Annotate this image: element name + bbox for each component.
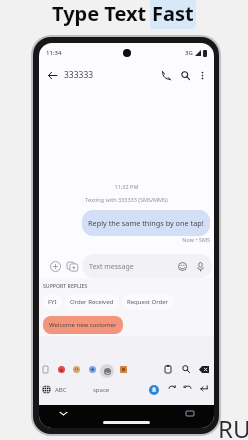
- staticText: 3G: [185, 49, 193, 57]
- staticText: ABC: [55, 386, 67, 394]
- button[interactable]: Request Order: [122, 294, 174, 310]
- button[interactable]: Objects: [117, 363, 129, 375]
- staticText: Request Order: [127, 298, 169, 306]
- button[interactable]: More options: [195, 68, 209, 82]
- button[interactable]: Reply the same things by one tap!: [82, 210, 210, 236]
- button[interactable]: FYI: [43, 294, 62, 310]
- button[interactable]: Call: [158, 67, 175, 84]
- staticText: Now • SMS: [43, 236, 210, 243]
- staticText: 11:32 PM: [43, 183, 210, 190]
- button[interactable]: space: [93, 382, 110, 398]
- staticText: 333333: [64, 69, 94, 81]
- button[interactable]: Backspace: [198, 363, 210, 375]
- button[interactable]: Animals: [70, 363, 82, 375]
- button[interactable]: Smileys: [55, 363, 67, 375]
- button[interactable]: Search keyboard: [180, 363, 192, 375]
- staticText: FYI: [48, 298, 57, 306]
- button[interactable]: Gallery: [64, 258, 80, 274]
- button[interactable]: Redo: [166, 382, 178, 394]
- button[interactable]: Add attachment: [47, 258, 63, 274]
- button[interactable]: Recent: [39, 363, 51, 375]
- staticText: RU: [218, 412, 248, 440]
- button[interactable]: Back: [44, 67, 61, 84]
- button[interactable]: Emoji: [176, 260, 189, 273]
- button[interactable]: Voice input: [194, 260, 207, 273]
- staticText: Text message: [89, 262, 134, 272]
- staticText: Order Received: [70, 298, 114, 306]
- button[interactable]: Order Received: [65, 294, 119, 310]
- button[interactable]: Clipboard: [162, 363, 174, 375]
- button[interactable]: Hide keyboard: [57, 407, 69, 419]
- staticText: Reply the same things by one tap!: [88, 218, 204, 228]
- button[interactable]: ABC: [55, 382, 67, 398]
- staticText: Type Text: [52, 0, 147, 27]
- staticText: space: [93, 386, 110, 394]
- button[interactable]: Keyboard switcher: [184, 407, 196, 419]
- button[interactable]: Welcome new customer: [43, 316, 123, 334]
- button[interactable]: Activities: [100, 364, 114, 378]
- staticText: Fast: [152, 0, 194, 27]
- staticText: Texting with 333333 (SMS/MMS): [43, 196, 210, 203]
- staticText: 11:34: [46, 49, 62, 57]
- button[interactable]: Search: [177, 67, 194, 84]
- staticText: SUPPORT REPLIES: [43, 282, 88, 289]
- staticText: Welcome new customer: [49, 321, 117, 329]
- button[interactable]: Food: [86, 363, 98, 375]
- button[interactable]: Assistant: [149, 385, 159, 395]
- button[interactable]: Text message: [82, 254, 212, 278]
- button[interactable]: Undo: [182, 382, 194, 394]
- button[interactable]: Enter: [198, 382, 210, 394]
- button[interactable]: Change language: [39, 382, 53, 396]
